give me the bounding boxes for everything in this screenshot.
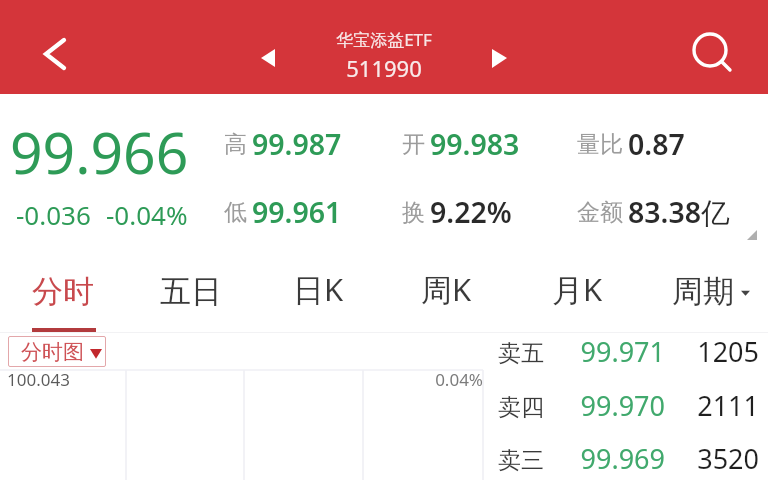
button[interactable]: 卖四 xyxy=(484,381,768,434)
button[interactable]: 分时 xyxy=(0,250,128,332)
staticText: 83.38亿 xyxy=(628,193,730,232)
staticText: 99.969 xyxy=(544,440,665,477)
button[interactable]: Expand quote details xyxy=(728,212,764,248)
staticText: 2111 xyxy=(665,387,759,424)
staticText: 金额 xyxy=(577,198,623,227)
button[interactable]: Previous stock xyxy=(249,39,287,77)
staticText: 卖五 xyxy=(498,339,544,368)
button[interactable]: Back xyxy=(22,22,78,78)
staticText: 99.971 xyxy=(544,333,665,370)
staticText: 五日 xyxy=(160,272,222,311)
button[interactable]: 月K xyxy=(520,250,648,332)
staticText: 分时图 xyxy=(21,339,84,365)
staticText: 换 xyxy=(402,198,425,227)
staticText: 分时 xyxy=(32,272,94,311)
button[interactable]: 华宝添益ETF xyxy=(284,28,484,83)
staticText: 0.87 xyxy=(628,125,685,164)
button[interactable]: 五日 xyxy=(128,250,262,332)
staticText: 1205 xyxy=(665,333,759,370)
staticText: 量比 xyxy=(577,130,623,159)
staticText: 511990 xyxy=(346,53,422,83)
staticText: -0.04% xyxy=(106,197,188,232)
button[interactable]: 周期 xyxy=(648,250,768,332)
button[interactable]: Search xyxy=(684,24,736,76)
staticText: 0.04% xyxy=(383,368,483,391)
staticText: 开 xyxy=(402,130,425,159)
staticText: 9.22% xyxy=(430,193,512,232)
button[interactable]: 卖五 xyxy=(484,327,768,380)
staticText: 100.043 xyxy=(7,368,70,391)
staticText: 99.970 xyxy=(544,387,665,424)
staticText: 周K xyxy=(421,268,472,310)
staticText: 月K xyxy=(552,268,603,310)
staticText: 99.983 xyxy=(430,125,520,164)
staticText: 卖四 xyxy=(498,393,544,422)
button[interactable]: 卖三 xyxy=(484,434,768,480)
button[interactable]: 分时图 xyxy=(8,336,106,367)
staticText: 3520 xyxy=(665,440,759,477)
staticText: -0.036 xyxy=(16,197,91,232)
staticText: 99.966 xyxy=(10,113,189,191)
staticText: 99.987 xyxy=(252,125,342,164)
staticText: 99.961 xyxy=(252,193,342,232)
staticText: 高 xyxy=(224,130,247,159)
staticText: 华宝添益ETF xyxy=(336,28,432,51)
button[interactable]: Next stock xyxy=(481,39,519,77)
staticText: 低 xyxy=(224,198,247,227)
staticText: 周期 xyxy=(672,272,734,311)
staticText: 日K xyxy=(293,268,344,310)
staticText: 卖三 xyxy=(498,446,544,475)
button[interactable]: 日K xyxy=(262,250,390,332)
button[interactable]: 周K xyxy=(390,250,520,332)
